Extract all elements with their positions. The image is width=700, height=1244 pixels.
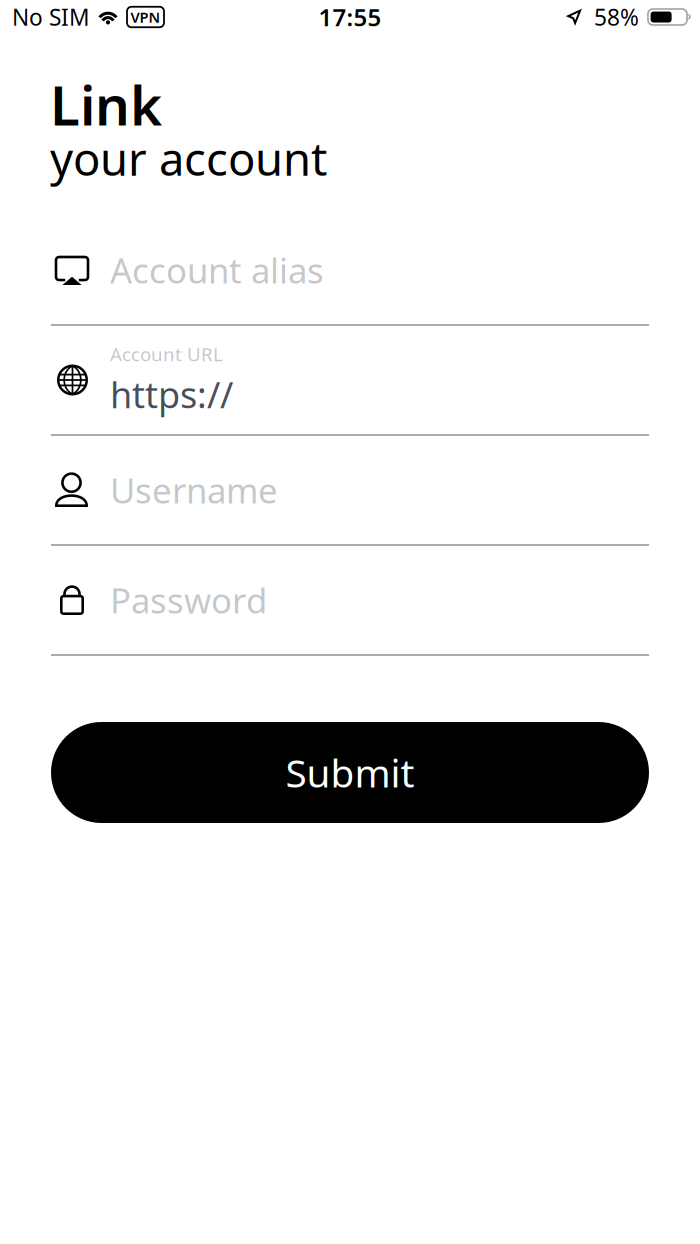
- button[interactable]: Username: [51, 436, 649, 546]
- staticText: Account URL: [110, 342, 223, 366]
- staticText: your account: [50, 128, 327, 188]
- staticText: Link: [50, 68, 162, 141]
- staticText: VPN: [130, 7, 160, 27]
- staticText: Account alias: [110, 247, 324, 293]
- staticText: Submit: [285, 747, 414, 798]
- staticText: 17:55: [318, 1, 381, 33]
- staticText: No SIM: [12, 2, 90, 32]
- button[interactable]: Password: [51, 546, 649, 656]
- staticText: Username: [110, 467, 278, 513]
- staticText: https://: [110, 370, 233, 418]
- staticText: Password: [110, 577, 267, 623]
- button[interactable]: Submit: [51, 722, 649, 823]
- button[interactable]: Account URL: [51, 326, 649, 436]
- staticText: 58%: [594, 2, 639, 32]
- button[interactable]: Account alias: [51, 216, 649, 326]
